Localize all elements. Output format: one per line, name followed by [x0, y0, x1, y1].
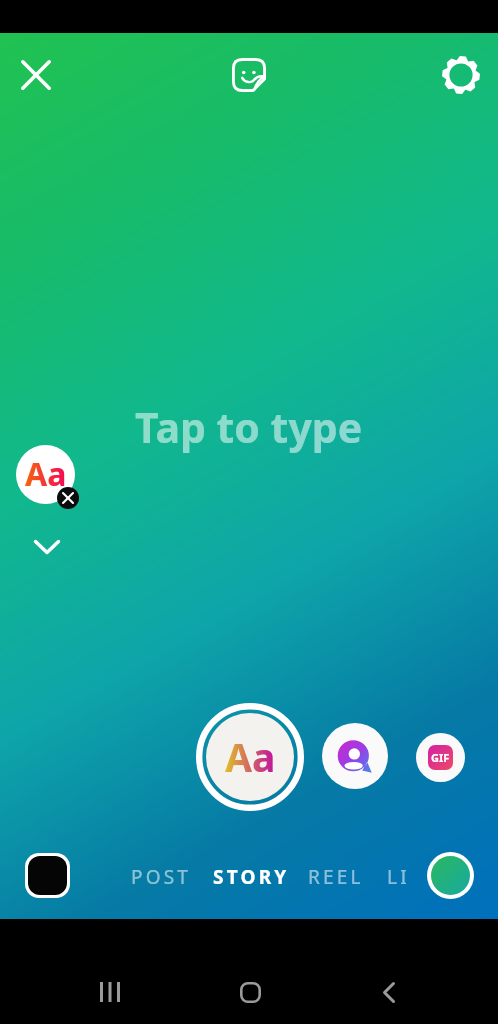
button[interactable]: Text tool [196, 703, 304, 811]
staticText: Tap to type [135, 399, 363, 455]
button[interactable]: STORY [213, 856, 290, 896]
button[interactable]: LIVE [387, 856, 406, 896]
button[interactable]: REEL [308, 856, 364, 896]
button[interactable]: Avatar sticker [322, 723, 388, 789]
button[interactable]: Camera mode [431, 856, 470, 895]
staticText: LIVE [387, 864, 406, 888]
button[interactable]: Home [226, 968, 274, 1016]
button[interactable]: Close [12, 51, 60, 99]
button[interactable]: GIF [416, 733, 465, 782]
button[interactable]: Gallery [28, 856, 67, 895]
button[interactable]: Remove sticker [57, 487, 79, 509]
button[interactable]: POST [131, 856, 192, 896]
staticText: Aa [25, 452, 67, 496]
staticText: STORY [213, 864, 290, 888]
button[interactable]: Settings [437, 51, 485, 99]
staticText: GIF [431, 750, 450, 765]
staticText: Aa [225, 730, 276, 783]
button[interactable]: Back [365, 968, 413, 1016]
staticText: POST [131, 864, 192, 888]
button[interactable]: Recent apps [86, 968, 134, 1016]
button[interactable]: Aa [16, 445, 75, 504]
button[interactable]: Stickers [225, 51, 273, 99]
staticText: REEL [308, 864, 364, 888]
button[interactable]: Collapse [25, 531, 69, 563]
